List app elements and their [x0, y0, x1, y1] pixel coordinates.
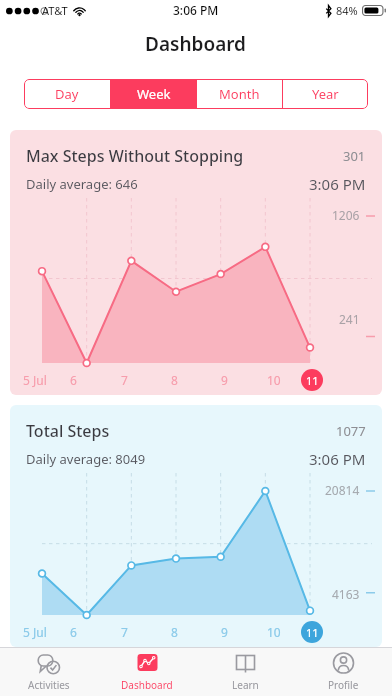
staticText: Daily average: 646 — [26, 175, 138, 193]
staticText: 10 — [267, 624, 281, 640]
staticText: 10 — [267, 372, 281, 388]
staticText: 8 — [171, 372, 178, 388]
button[interactable]: Learn — [196, 647, 294, 696]
staticText: Dashboard — [121, 678, 173, 692]
staticText: 5 Jul — [23, 624, 47, 640]
staticText: 1077 — [336, 422, 366, 440]
staticText: Year — [312, 85, 339, 103]
staticText: 20814 — [325, 482, 360, 498]
button[interactable]: Month — [197, 79, 282, 109]
button[interactable]: Day — [24, 79, 110, 109]
button[interactable]: Profile — [294, 647, 392, 696]
staticText: 9 — [221, 372, 228, 388]
staticText: 5 Jul — [23, 372, 47, 388]
staticText: Total Steps — [26, 420, 110, 442]
staticText: AT&T — [42, 3, 68, 18]
staticText: 6 — [70, 372, 77, 388]
button[interactable]: Max Steps Without Stopping — [10, 130, 382, 395]
staticText: 3:06 PM — [309, 174, 366, 194]
staticText: Day — [55, 85, 79, 103]
staticText: Daily average: 8049 — [26, 450, 146, 468]
staticText: 1206 — [332, 207, 360, 223]
button[interactable]: Total Steps — [10, 405, 382, 647]
staticText: 8 — [171, 624, 178, 640]
staticText: 7 — [121, 624, 128, 640]
button[interactable]: Activities — [0, 647, 98, 696]
staticText: Month — [219, 85, 260, 103]
button[interactable]: Dashboard — [98, 647, 196, 696]
staticText: 3:06 PM — [309, 449, 366, 469]
button[interactable]: Year — [283, 79, 368, 109]
staticText: 84% — [336, 3, 358, 18]
button[interactable]: Week — [111, 79, 196, 109]
staticText: 7 — [121, 372, 128, 388]
staticText: Dashboard — [145, 31, 247, 57]
staticText: 4163 — [332, 586, 360, 602]
staticText: 11 — [306, 625, 319, 640]
staticText: Activities — [28, 678, 70, 692]
staticText: 3:06 PM — [173, 2, 219, 18]
staticText: 11 — [306, 373, 319, 388]
staticText: 9 — [221, 624, 228, 640]
staticText: Max Steps Without Stopping — [26, 145, 244, 167]
staticText: Profile — [328, 678, 359, 692]
staticText: 301 — [343, 147, 366, 165]
staticText: 241 — [339, 311, 360, 327]
staticText: Learn — [232, 678, 259, 692]
staticText: 6 — [70, 624, 77, 640]
staticText: Week — [137, 85, 171, 103]
